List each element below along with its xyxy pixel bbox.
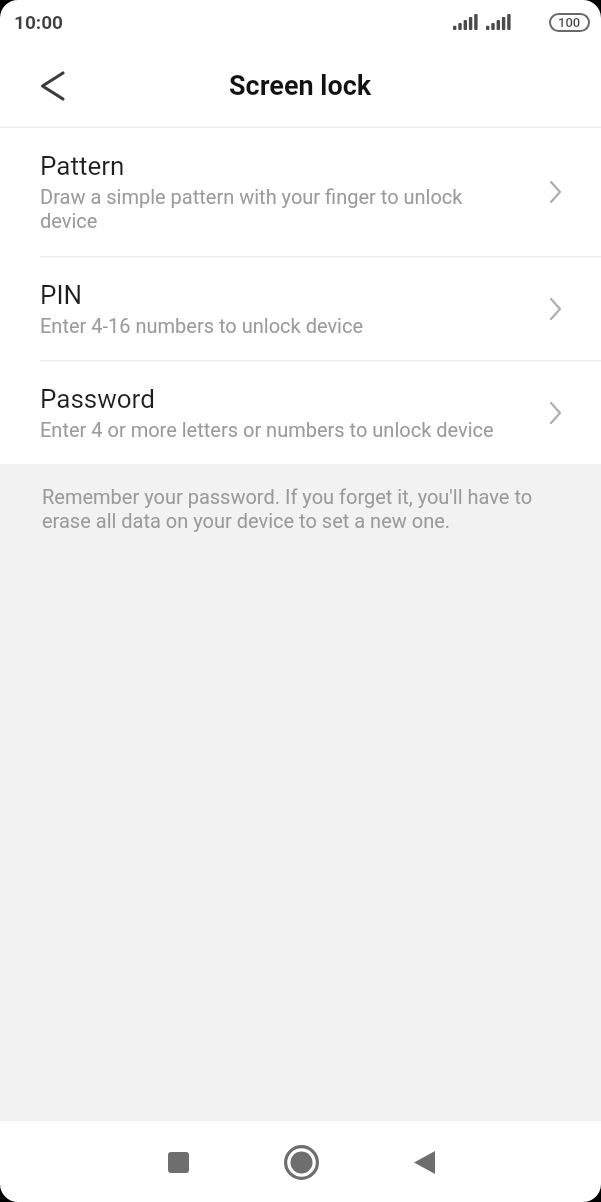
staticText: Remember your password. If you forget it… bbox=[42, 485, 561, 533]
staticText: Enter 4 or more letters or numbers to un… bbox=[40, 418, 494, 441]
staticText: Pattern bbox=[40, 151, 125, 181]
button[interactable]: Password bbox=[0, 361, 601, 464]
staticText: Enter 4-16 numbers to unlock device bbox=[40, 314, 364, 337]
staticText: 10:00 bbox=[14, 11, 63, 33]
button[interactable] bbox=[283, 1144, 319, 1180]
staticText: PIN bbox=[40, 280, 83, 310]
button[interactable] bbox=[406, 1144, 442, 1180]
staticText: Draw a simple pattern with your finger t… bbox=[40, 185, 520, 233]
staticText: 100 bbox=[558, 15, 581, 30]
button[interactable]: Pattern bbox=[0, 128, 601, 256]
staticText: Password bbox=[40, 384, 155, 414]
button[interactable] bbox=[30, 64, 74, 108]
button[interactable]: PIN bbox=[0, 257, 601, 360]
staticText: Screen lock bbox=[229, 70, 372, 102]
button[interactable] bbox=[160, 1144, 196, 1180]
